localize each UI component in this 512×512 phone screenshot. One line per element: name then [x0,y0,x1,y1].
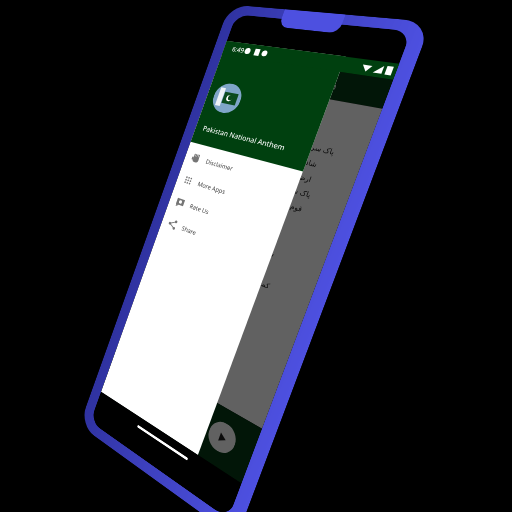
staticText: More Apps [197,179,227,196]
staticText: پاک سرزمین شاد باد کشورِ حسین بلند عزم [196,116,365,165]
staticText: شاد باد منزلِ مراد پرچمِ کریم [163,210,323,277]
staticText: Pakistan National Anthem [240,65,339,91]
staticText: قوم، ملک، سلطنت پائندہ تابندہ قوم [178,168,342,227]
staticText: پاک سرزمین کا نظام قوّتِ اخوّتِ عوام [183,155,348,211]
staticText: Share [181,224,198,237]
staticText: ارضِ پاکستان مرکزِ یقین شاد باد ام [187,143,353,196]
staticText: شانِ حال جانِ استقبال حال [149,249,305,324]
button[interactable]: Play [204,416,240,459]
button[interactable]: Share [159,210,274,272]
staticText: Rate Us [189,202,211,216]
button[interactable]: Rate Us [167,188,283,248]
staticText: سایۂ خدائے ذوالجلال اللہ [144,262,300,339]
staticText: کمال ترجمانِ ماضی ہمارے ماضی [154,236,311,308]
button[interactable]: More Apps [174,166,293,223]
button[interactable]: Disclaimer [182,144,302,198]
staticText: Disclaimer [205,157,235,173]
staticText: 6:49 [231,45,246,56]
staticText: ستارہ و ہلال رہبرِ ترقی [158,223,317,293]
staticText: Pakistan National Anthem [202,123,287,152]
staticText: شاد باد تُو نشانِ عزمِ عالی شان آپ [192,130,359,181]
